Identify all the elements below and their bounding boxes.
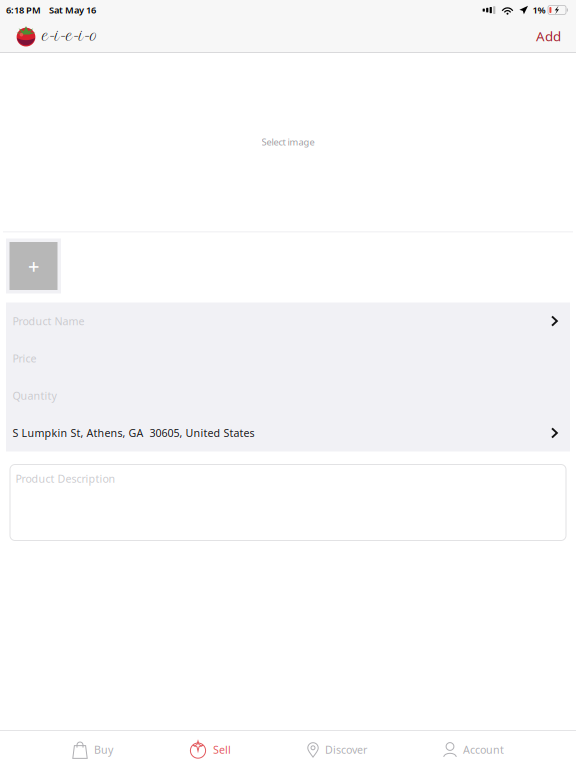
button[interactable]: Buy [64,731,121,768]
staticText: Product Name [12,314,84,328]
button[interactable]: + [9,242,57,290]
staticText: Discover [325,742,367,757]
button[interactable]: Sell [181,731,239,768]
button[interactable]: Discover [299,731,375,768]
staticText: e-i-e-i-o [42,28,98,44]
button[interactable]: S Lumpkin St, Athens, GA 30605, United S… [6,414,570,452]
staticText: 1% [532,4,545,16]
staticText: Account [463,742,504,757]
staticText: + [28,253,39,279]
staticText: S Lumpkin St, Athens, GA 30605, United S… [12,426,254,440]
staticText: Buy [94,742,113,757]
button[interactable]: e-i-e-i-o [0,20,108,52]
button[interactable]: Add [521,20,576,52]
staticText: Sell [213,742,231,757]
staticText: Add [536,27,561,45]
button[interactable]: Product Name [6,302,570,340]
staticText: Select image [261,136,314,148]
staticText: Price [12,351,36,365]
staticText: 6:18 PM [6,4,41,16]
button[interactable]: Product Description [10,464,566,540]
staticText: Product Description [15,471,115,486]
staticText: Sat May 16 [49,4,96,16]
button[interactable]: Account [435,731,512,768]
staticText: Quantity [12,389,56,403]
